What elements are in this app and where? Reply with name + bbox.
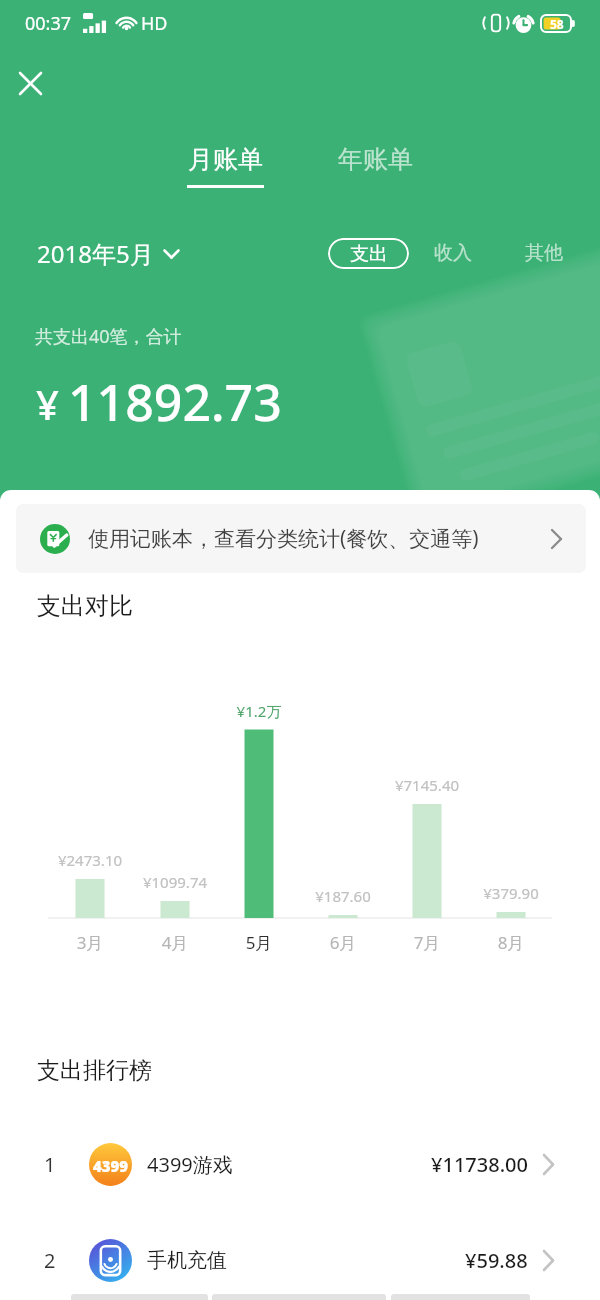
button[interactable]: Close xyxy=(8,61,52,105)
staticText: ¥2473.10 xyxy=(40,850,140,870)
staticText: ¥1099.74 xyxy=(125,872,225,892)
staticText: 支出对比 xyxy=(37,591,133,621)
button[interactable]: 月账单 xyxy=(181,144,270,188)
staticText: 支出 xyxy=(350,242,388,266)
button[interactable]: 2018年5月 xyxy=(31,233,185,274)
staticText: 使用记账本，查看分类统计(餐饮、交通等) xyxy=(88,524,479,553)
staticText: 支出排行榜 xyxy=(37,1056,152,1085)
staticText: ¥7145.40 xyxy=(377,775,477,795)
staticText: 其他 xyxy=(525,241,563,265)
staticText: ¥ xyxy=(36,377,59,431)
staticText: 8月 xyxy=(461,931,561,954)
staticText: 4399游戏 xyxy=(147,1151,233,1178)
staticText: 手机充值 xyxy=(147,1248,227,1273)
staticText: 共支出40笔，合计 xyxy=(35,324,182,349)
staticText: ¥59.88 xyxy=(465,1247,528,1274)
staticText: 5月 xyxy=(209,931,309,954)
button[interactable]: 年账单 xyxy=(332,144,419,175)
staticText: 1 xyxy=(44,1151,56,1178)
staticText: 4399 xyxy=(93,1156,129,1176)
staticText: 11892.73 xyxy=(68,368,282,436)
staticText: 3月 xyxy=(40,931,140,954)
staticText: 年账单 xyxy=(338,144,413,175)
staticText: 6月 xyxy=(293,931,393,954)
staticText: ¥11738.00 xyxy=(431,1151,528,1178)
staticText: 00:37 xyxy=(25,11,72,36)
staticText: ¥379.90 xyxy=(461,883,561,903)
staticText: 58 xyxy=(550,16,564,32)
button[interactable]: 收入 xyxy=(428,236,478,270)
button[interactable]: 支出 xyxy=(328,238,409,269)
staticText: 4月 xyxy=(125,931,225,954)
staticText: 月账单 xyxy=(188,144,263,175)
staticText: 7月 xyxy=(377,931,477,954)
staticText: ¥1.2万 xyxy=(209,701,309,721)
button[interactable]: 其他 xyxy=(519,236,569,270)
staticText: 2018年5月 xyxy=(37,237,154,270)
button[interactable]: 使用记账本，查看分类统计(餐饮、交通等) xyxy=(16,504,586,573)
staticText: 收入 xyxy=(434,241,472,265)
button[interactable]: 2 xyxy=(0,1212,600,1300)
staticText: ¥187.60 xyxy=(293,886,393,906)
staticText: HD xyxy=(141,11,168,36)
staticText: 2 xyxy=(44,1247,56,1274)
button[interactable]: 1 xyxy=(0,1116,600,1212)
